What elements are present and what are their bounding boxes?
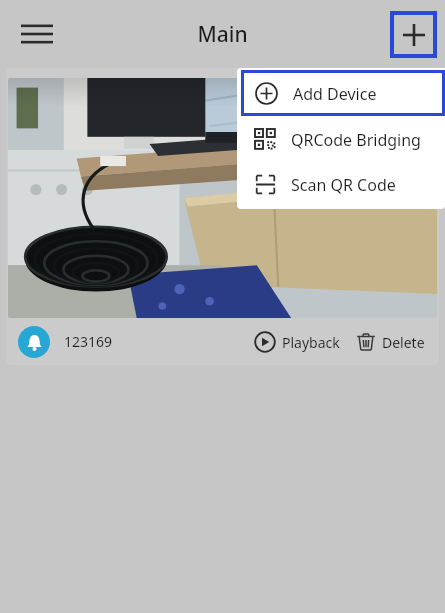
staticText: Add Device [293, 83, 377, 105]
staticText: Playback [282, 333, 340, 352]
button[interactable]: Add [394, 15, 433, 54]
staticText: Scan QR Code [291, 174, 396, 196]
staticText: 123169 [64, 332, 113, 351]
button[interactable]: Alarm [6, 68, 439, 365]
staticText: QRCode Bridging [291, 129, 421, 151]
button[interactable]: Delete [354, 332, 427, 352]
button[interactable]: Menu [10, 7, 64, 61]
staticText: Delete [382, 333, 425, 352]
staticText: Main [197, 20, 248, 49]
button[interactable]: Alarm [18, 326, 50, 358]
button[interactable]: QRCode Bridging [237, 117, 445, 162]
button[interactable]: Add Device [244, 73, 442, 113]
button[interactable]: Scan QR Code [237, 162, 445, 207]
button[interactable]: Playback [252, 331, 342, 353]
